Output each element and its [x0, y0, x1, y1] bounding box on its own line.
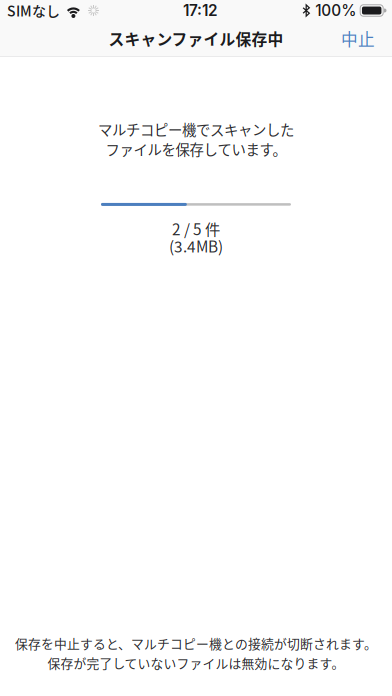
- staticText: 中止: [341, 26, 375, 50]
- staticText: 100%: [315, 1, 356, 20]
- staticText: (3.4MB): [169, 235, 223, 257]
- staticText: 17:12: [183, 1, 218, 20]
- staticText: 2 / 5 件: [172, 217, 220, 240]
- staticText: SIMなし: [7, 0, 60, 21]
- staticText: 保存が完了していないファイルは無効になります。: [47, 653, 344, 672]
- staticText: マルチコピー機でスキャンした: [98, 119, 294, 140]
- button[interactable]: 中止: [332, 19, 384, 57]
- staticText: 保存を中止すると、マルチコピー機との接続が切断されます。: [15, 634, 377, 652]
- staticText: ファイルを保存しています。: [105, 139, 286, 159]
- staticText: スキャンファイル保存中: [108, 27, 283, 50]
